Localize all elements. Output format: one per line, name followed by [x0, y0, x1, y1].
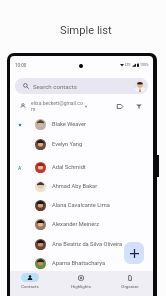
- staticText: Alexander Meinerz: [52, 221, 99, 228]
- staticText: Ana Beatriz da Silva Oliveira: [52, 241, 123, 248]
- button[interactable]: Search contacts: [15, 78, 148, 94]
- button[interactable]: elisa.beckett@gmail.com: [20, 100, 86, 112]
- button[interactable]: Aparna Bhattacharya: [10, 254, 153, 273]
- staticText: Blake Weaver: [52, 121, 86, 128]
- staticText: 10:00: [15, 63, 27, 68]
- staticText: Evelyn Yang: [52, 141, 83, 148]
- staticText: elisa.beckett@gmail.com: [31, 100, 86, 112]
- button[interactable]: Blake Weaver: [10, 115, 153, 134]
- button[interactable]: Organize: [108, 271, 152, 289]
- staticText: LTE: [125, 63, 131, 67]
- button[interactable]: Filter: [133, 100, 145, 112]
- staticText: Aparna Bhattacharya: [52, 260, 106, 267]
- staticText: Simple list: [60, 24, 112, 37]
- button[interactable]: Ana Beatriz da Silva Oliveira: [10, 235, 153, 254]
- staticText: Ahmad Aby Bakar: [52, 183, 98, 190]
- button[interactable]: A: [10, 158, 153, 177]
- button[interactable]: Alexander Meinerz: [10, 215, 153, 234]
- button[interactable]: Ahmad Aby Bakar: [10, 177, 153, 196]
- button[interactable]: Alana Cavalcante Lima: [10, 196, 153, 215]
- staticText: A: [18, 165, 22, 171]
- button[interactable]: Account: [134, 80, 146, 92]
- staticText: Alana Cavalcante Lima: [52, 202, 110, 209]
- button[interactable]: Create new contact: [124, 242, 144, 264]
- staticText: 100%: [140, 63, 149, 67]
- staticText: Adal Schmidt: [52, 164, 86, 171]
- button[interactable]: Contacts: [10, 271, 52, 289]
- button[interactable]: Evelyn Yang: [10, 135, 153, 154]
- staticText: Search contacts: [33, 83, 77, 90]
- button[interactable]: Highlights: [59, 271, 103, 289]
- staticText: Highlights: [71, 284, 91, 289]
- staticText: Organize: [121, 284, 139, 289]
- staticText: Contacts: [21, 284, 39, 289]
- button[interactable]: Labels: [114, 100, 126, 112]
